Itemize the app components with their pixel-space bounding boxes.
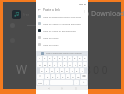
button[interactable]: j [70,68,74,73]
button[interactable]: r [53,62,57,67]
button[interactable]: l [80,68,84,73]
staticText: h [66,69,68,72]
button[interactable]: 8 [73,56,77,61]
staticText: o [79,63,81,66]
button[interactable]: 7 [68,56,72,61]
staticText: 3 [49,57,51,60]
staticText: 5 [59,57,61,60]
button[interactable]: m [76,74,80,79]
staticText: 0 [84,57,86,60]
staticText: m [77,75,80,78]
button[interactable]: ← [38,7,86,13]
button[interactable]: Shift [37,74,44,79]
staticText: ← [38,8,41,12]
staticText: k [76,69,78,72]
button[interactable]: q [37,62,42,67]
button[interactable]: 5 [58,56,62,61]
button[interactable]: w [43,62,47,67]
staticText: ?123 [38,82,42,84]
button[interactable]: x [51,74,55,79]
staticText: q [39,63,41,66]
staticText: ◁ [48,87,50,89]
button[interactable]: , [44,80,49,85]
button[interactable]: e [48,62,52,67]
staticText: 8 [74,57,76,60]
button[interactable]: y [63,62,67,67]
button[interactable]: 6 [63,56,67,61]
button[interactable]: v [61,74,65,79]
button[interactable]: How to download music and song [38,13,86,20]
button[interactable]: b [66,74,70,79]
button[interactable]: 0 [83,56,87,61]
button[interactable]: i [73,62,77,67]
staticText: f [57,69,58,72]
staticText: c [57,75,59,78]
staticText: How to Install [43,36,59,39]
staticText: j [72,69,73,72]
staticText: s [46,69,48,72]
staticText: How to create a Android Emulator [43,22,82,25]
button[interactable]: How to install [38,41,86,48]
button[interactable]: d [50,68,54,73]
button[interactable]: Back [48,87,50,89]
staticText: ⌫ [82,75,86,78]
button[interactable]: How to Install [38,34,86,41]
staticText: v [62,75,64,78]
staticText: o Download [85,9,124,19]
staticText: t [60,63,61,66]
staticText: How to install [43,43,59,46]
staticText: Paste a link [43,8,60,12]
staticText: . [76,81,77,84]
staticText: How to download music and song [43,15,82,18]
staticText: Free [23,13,30,17]
button[interactable]: Backspace [81,74,87,79]
staticText: 6 [64,57,66,60]
button[interactable]: h [65,68,69,73]
staticText: u [69,63,71,66]
button[interactable]: How to Audio of Recombined [38,27,86,34]
button[interactable]: Home [61,87,63,89]
staticText: y [64,63,66,66]
staticText: 1 [39,57,41,60]
button[interactable]: z [45,74,50,79]
button[interactable]: k [75,68,79,73]
staticText: 7 [69,57,71,60]
button[interactable]: 9 [78,56,82,61]
button[interactable]: ?123 [37,80,43,85]
staticText: r [54,63,56,66]
staticText: W [16,61,28,77]
staticText: how to download videos from internet [46,52,82,55]
button[interactable]: 2 [43,56,47,61]
staticText: d [51,69,53,72]
button[interactable]: Search [80,80,87,85]
button[interactable]: 1 [37,56,42,61]
button[interactable]: n [71,74,75,79]
staticText: z [47,75,49,78]
staticText: ▬▬ ▬ [79,3,86,6]
button[interactable]: p [83,62,87,67]
button[interactable]: How to create a Android Emulator [38,20,86,27]
staticText: i [75,63,76,66]
staticText: 2 [44,57,46,60]
button[interactable]: f [55,68,59,73]
button[interactable]: 4 [53,56,57,61]
staticText: ○ [61,87,63,89]
staticText: 8 0 0 [85,63,108,77]
staticText: w [44,63,46,66]
staticText: 4 [54,57,56,60]
staticText: ⌕ [83,81,85,84]
button[interactable]: o [78,62,82,67]
button[interactable]: 3 [48,56,52,61]
staticText: a [41,69,43,72]
button[interactable]: t [58,62,62,67]
button[interactable]: u [68,62,72,67]
button[interactable]: g [60,68,64,73]
button[interactable]: a [40,68,44,73]
button[interactable]: c [56,74,60,79]
button[interactable]: s [45,68,49,73]
staticText: n [72,75,74,78]
